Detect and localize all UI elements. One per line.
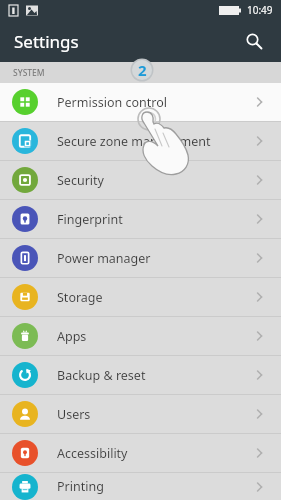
button[interactable]: Printing <box>0 473 281 500</box>
button[interactable]: Power manager <box>0 239 281 277</box>
button[interactable]: Fingerprint <box>0 200 281 238</box>
button[interactable]: Users <box>0 395 281 433</box>
staticText: Storage <box>57 289 252 306</box>
staticText: Printing <box>57 478 252 495</box>
staticText: Backup & reset <box>57 367 252 384</box>
staticText: SYSTEM <box>13 67 45 79</box>
staticText: Apps <box>57 328 252 345</box>
staticText: 10:49 <box>247 3 273 17</box>
staticText: Permission control <box>57 94 252 111</box>
button[interactable]: Secure zone management <box>0 122 281 160</box>
button[interactable]: Storage <box>0 278 281 316</box>
button[interactable]: Backup & reset <box>0 356 281 394</box>
button[interactable]: Accessibility <box>0 434 281 472</box>
staticText: Accessibility <box>57 445 252 462</box>
staticText: Secure zone management <box>57 133 252 150</box>
staticText: Users <box>57 406 252 423</box>
staticText: Fingerprint <box>57 211 252 228</box>
staticText: Settings <box>14 30 79 53</box>
staticText: Power manager <box>57 250 252 267</box>
staticText: Security <box>57 172 252 189</box>
button[interactable]: Permission control <box>0 83 281 121</box>
button[interactable]: Apps <box>0 317 281 355</box>
button[interactable]: Security <box>0 161 281 199</box>
button[interactable]: Search <box>235 22 273 60</box>
staticText: 2 <box>138 60 147 80</box>
